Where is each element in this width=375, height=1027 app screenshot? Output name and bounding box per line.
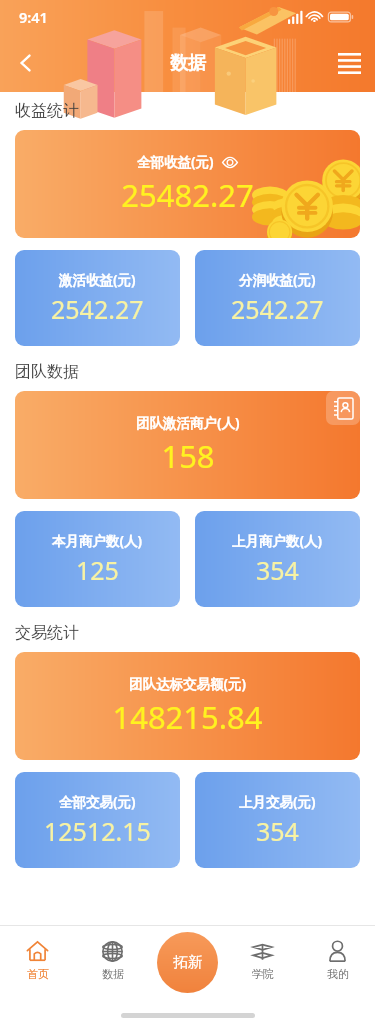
staticText: 团队达标交易额(元)	[129, 675, 247, 693]
staticText: 分润收益(元)	[239, 271, 316, 289]
staticText: 学院	[252, 967, 274, 981]
staticText: 158	[161, 435, 215, 477]
staticText: 本月商户数(人)	[52, 532, 143, 550]
button[interactable]: 数据	[75, 926, 150, 994]
staticText: 我的	[327, 967, 349, 981]
staticText: 12512.15	[44, 814, 151, 848]
staticText: 2542.27	[51, 292, 144, 326]
staticText: 354	[256, 814, 299, 848]
staticText: 全部收益(元)	[137, 153, 214, 171]
button[interactable]: Back	[0, 34, 52, 92]
button[interactable]: 学院	[225, 926, 300, 994]
button[interactable]: 拓新	[157, 932, 218, 993]
button[interactable]: Merchant list	[15, 391, 360, 499]
staticText: 354	[256, 553, 299, 587]
staticText: 148215.84	[112, 696, 263, 738]
button[interactable]: Merchant list	[326, 391, 360, 425]
button[interactable]: 本月商户数(人)	[15, 511, 180, 607]
staticText: 收益统计	[15, 101, 79, 121]
button[interactable]: 全部收益(元)	[15, 130, 360, 238]
staticText: 数据	[102, 967, 124, 981]
staticText: 125	[76, 553, 119, 587]
button[interactable]: 激活收益(元)	[15, 250, 180, 346]
staticText: 团队激活商户(人)	[136, 414, 240, 432]
staticText: 上月商户数(人)	[232, 532, 323, 550]
staticText: 25482.27	[121, 174, 254, 216]
button[interactable]: 全部交易(元)	[15, 772, 180, 868]
button[interactable]: 上月商户数(人)	[195, 511, 360, 607]
staticText: 激活收益(元)	[59, 271, 136, 289]
button[interactable]: 团队达标交易额(元)	[15, 652, 360, 760]
staticText: 团队数据	[15, 362, 79, 382]
staticText: 数据	[170, 52, 206, 75]
button[interactable]: 分润收益(元)	[195, 250, 360, 346]
button[interactable]: Toggle amount visibility	[221, 153, 239, 171]
staticText: 2542.27	[231, 292, 324, 326]
button[interactable]: 首页	[0, 926, 75, 994]
button[interactable]: 上月交易(元)	[195, 772, 360, 868]
staticText: 9:41	[19, 7, 48, 27]
staticText: 全部交易(元)	[59, 793, 136, 811]
staticText: 交易统计	[15, 623, 79, 643]
button[interactable]: 我的	[300, 926, 375, 994]
staticText: 上月交易(元)	[239, 793, 316, 811]
button[interactable]: Menu	[323, 34, 375, 92]
staticText: 拓新	[173, 953, 203, 972]
staticText: 首页	[27, 967, 49, 981]
